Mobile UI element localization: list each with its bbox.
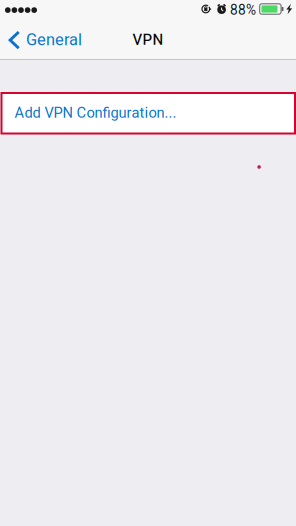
button[interactable]: Add VPN Configuration... bbox=[1, 93, 295, 133]
staticText: VPN bbox=[132, 29, 163, 51]
staticText: Add VPN Configuration... bbox=[14, 102, 176, 124]
staticText: 88% bbox=[230, 0, 256, 21]
button[interactable]: General bbox=[0, 18, 90, 58]
staticText: General bbox=[26, 28, 82, 52]
